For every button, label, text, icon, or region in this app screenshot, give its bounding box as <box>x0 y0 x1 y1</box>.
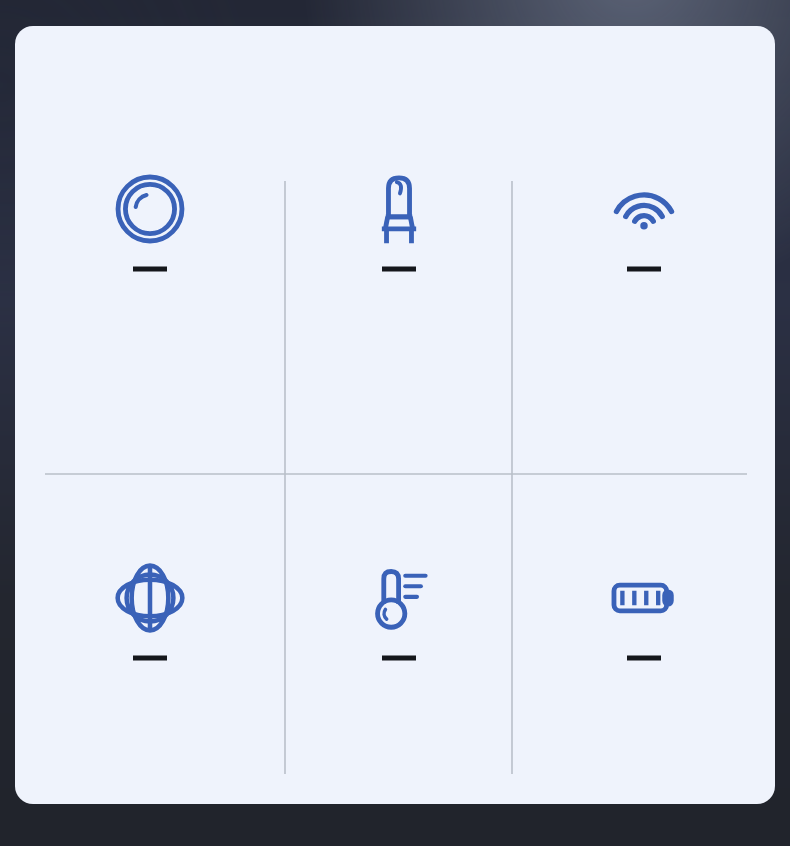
button[interactable]: Microphone <box>285 26 512 415</box>
button[interactable]: Gyroscope <box>15 415 285 804</box>
button[interactable]: Temperature <box>285 415 512 804</box>
button[interactable]: Camera <box>15 26 285 415</box>
button[interactable]: Battery <box>512 415 775 804</box>
button[interactable]: Wi-Fi <box>512 26 775 415</box>
